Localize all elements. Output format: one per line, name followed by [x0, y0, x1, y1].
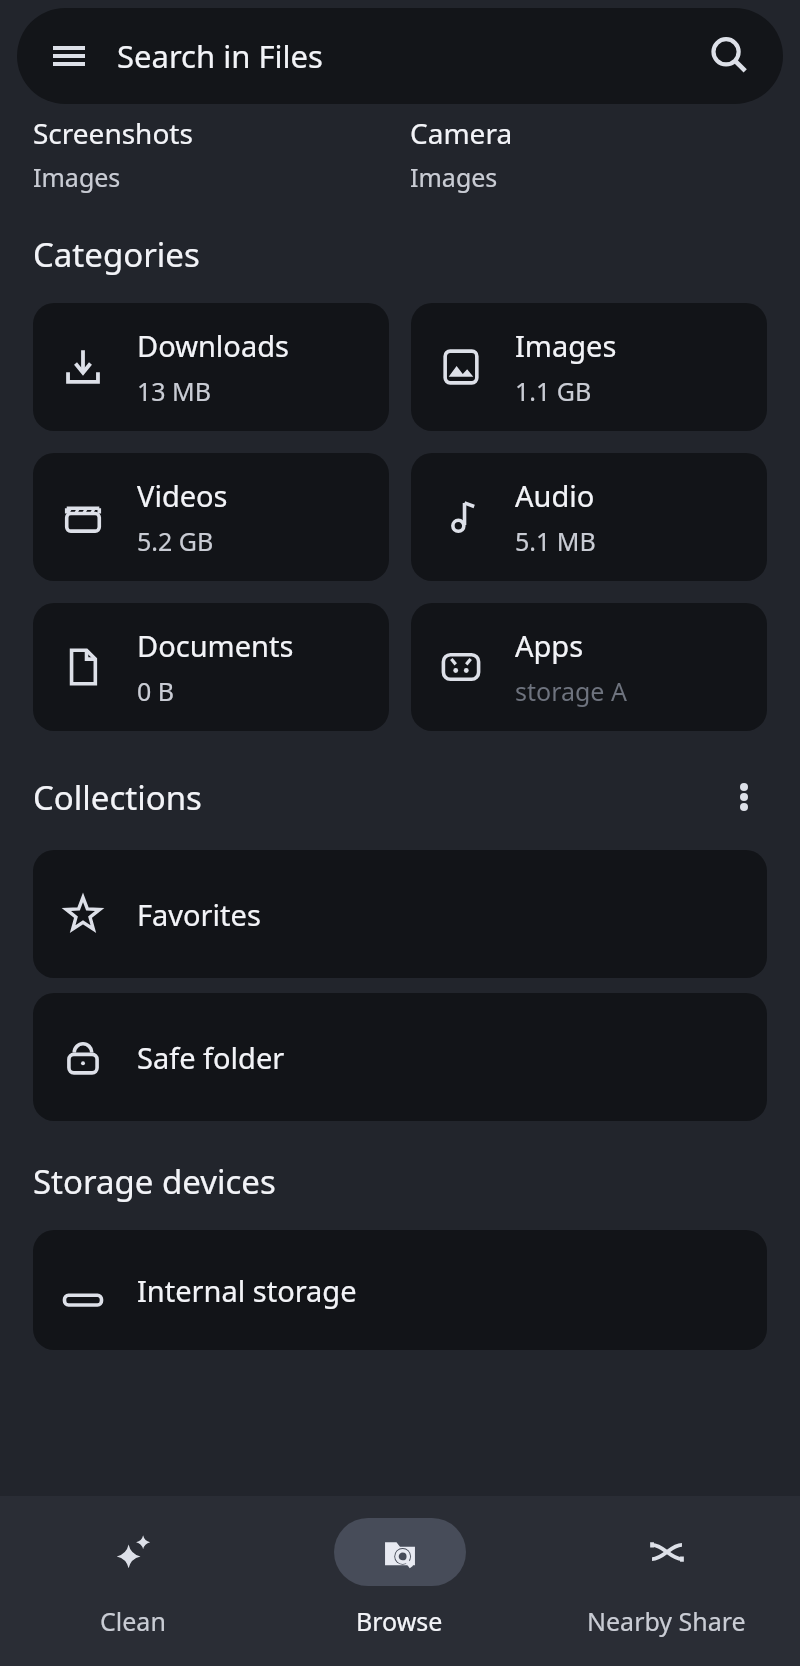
staticText: Videos — [137, 476, 228, 515]
staticText: storage A — [515, 674, 627, 708]
other: Search — [705, 32, 753, 80]
staticText: Documents — [137, 626, 294, 665]
button[interactable]: Downloads — [33, 303, 389, 431]
staticText: Downloads — [137, 326, 289, 365]
staticText: Internal storage — [137, 1271, 357, 1310]
button[interactable]: More options — [716, 769, 772, 825]
button[interactable]: Camera — [410, 114, 767, 194]
button[interactable]: Videos — [33, 453, 389, 581]
staticText: Browse — [356, 1604, 443, 1638]
staticText: Images — [410, 160, 498, 194]
button[interactable]: Internal storage — [33, 1230, 767, 1350]
staticText: Safe folder — [137, 1038, 285, 1077]
button[interactable]: Safe folder — [33, 993, 767, 1121]
staticText: Clean — [100, 1604, 166, 1638]
staticText: Nearby Share — [587, 1604, 746, 1638]
other: Menu — [47, 34, 91, 78]
staticText: Screenshots — [33, 114, 193, 146]
button[interactable]: Apps — [411, 603, 767, 731]
staticText: 5.1 MB — [515, 524, 596, 558]
staticText: 5.2 GB — [137, 524, 214, 558]
button[interactable]: Screenshots — [33, 114, 390, 194]
staticText: Search in Files — [117, 35, 323, 77]
button[interactable]: Documents — [33, 603, 389, 731]
button[interactable]: Menu — [17, 8, 783, 104]
button[interactable]: Clean — [0, 1496, 266, 1666]
staticText: 1.1 GB — [515, 374, 592, 408]
staticText: Favorites — [137, 895, 261, 934]
staticText: Categories — [33, 232, 200, 277]
staticText: Collections — [33, 775, 202, 820]
staticText: Apps — [515, 626, 584, 665]
staticText: 0 B — [137, 674, 175, 708]
button[interactable]: Audio — [411, 453, 767, 581]
button[interactable]: Browse — [266, 1496, 533, 1666]
staticText: 13 MB — [137, 374, 212, 408]
staticText: Camera — [410, 114, 513, 146]
staticText: Audio — [515, 476, 595, 515]
staticText: Images — [33, 160, 121, 194]
button[interactable]: Nearby Share — [533, 1496, 800, 1666]
staticText: Storage devices — [33, 1159, 276, 1204]
button[interactable]: Images — [411, 303, 767, 431]
staticText: Images — [515, 326, 617, 365]
button[interactable]: Favorites — [33, 850, 767, 978]
